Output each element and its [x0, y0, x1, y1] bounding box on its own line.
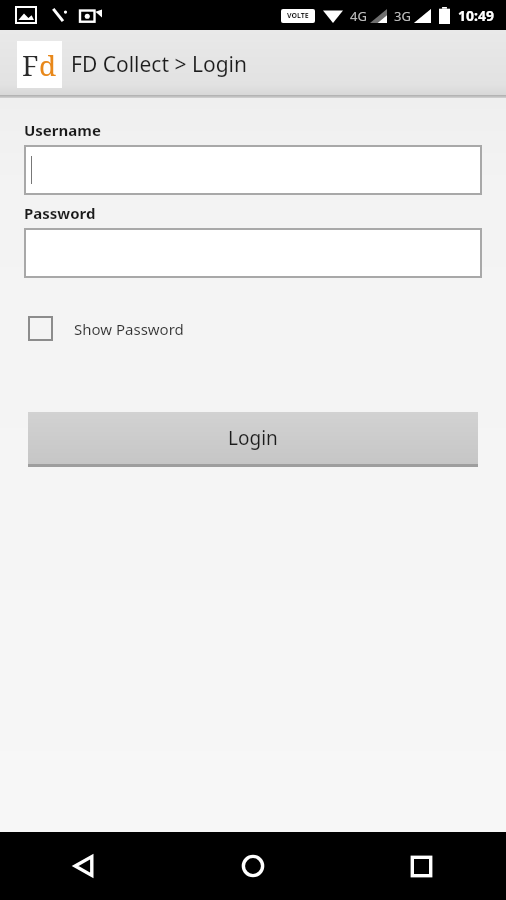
staticText: 3G	[394, 7, 411, 25]
button[interactable]: Username input	[24, 145, 482, 195]
staticText: d	[39, 46, 57, 84]
button[interactable]: Show Password	[28, 312, 196, 345]
button[interactable]: Recent apps	[337, 832, 506, 900]
button[interactable]: Back	[0, 832, 168, 900]
staticText: Login	[228, 425, 278, 451]
staticText: Username	[24, 120, 101, 140]
staticText: F	[22, 46, 39, 84]
staticText: FD Collect > Login	[71, 50, 247, 79]
button[interactable]: Home	[168, 832, 337, 900]
button[interactable]: Password input	[24, 228, 482, 278]
staticText: 10:49	[458, 6, 494, 25]
button[interactable]: FD Collect logo	[17, 41, 62, 88]
staticText: Password	[24, 203, 96, 223]
staticText: Show Password	[74, 319, 184, 339]
button[interactable]: Login	[28, 412, 478, 467]
staticText: 4G	[350, 7, 367, 25]
staticText: VOLTE	[287, 11, 309, 21]
